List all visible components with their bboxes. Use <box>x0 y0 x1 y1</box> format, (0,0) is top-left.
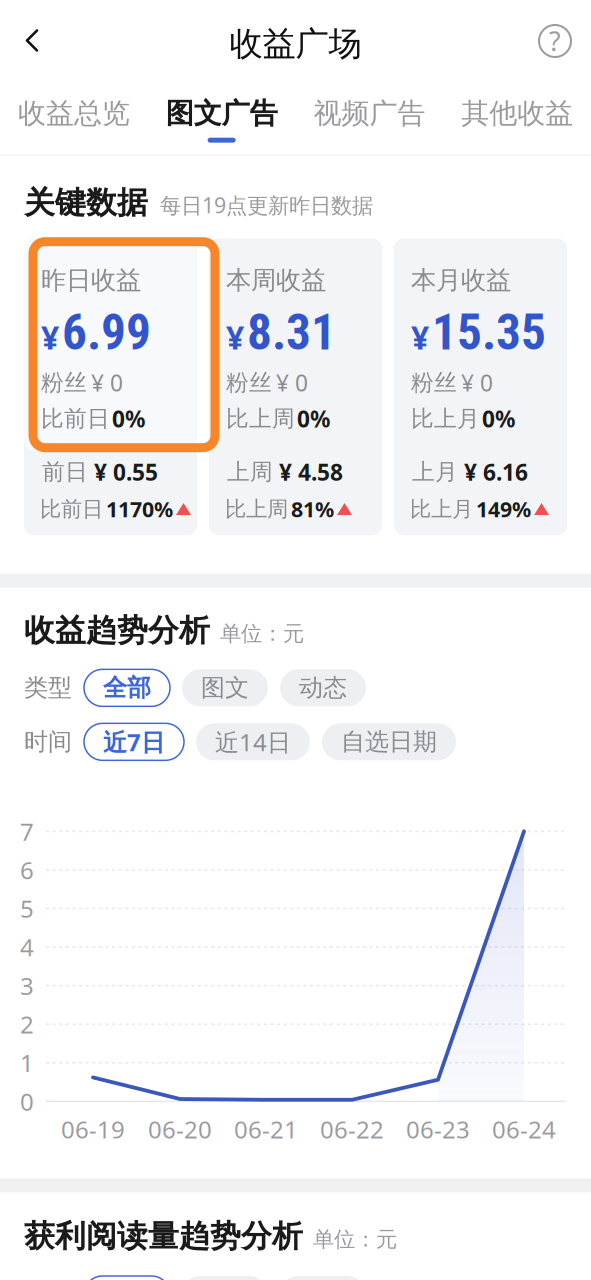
button[interactable]: 图文 <box>182 1276 268 1280</box>
staticText: ¥ 0 <box>91 368 123 398</box>
button[interactable]: 图文广告 <box>148 80 296 147</box>
staticText: 粉丝 <box>411 369 457 396</box>
staticText: 每日19点更新昨日数据 <box>160 191 373 219</box>
staticText: 本周收益 <box>226 265 326 296</box>
staticText: 其他收益 <box>461 96 573 131</box>
staticText: ¥ 0 <box>461 368 493 398</box>
staticText: 比上周 <box>225 496 288 522</box>
staticText: 3 <box>20 970 34 1002</box>
staticText: 上周 <box>227 458 273 486</box>
staticText: ¥ 0.55 <box>94 457 158 487</box>
staticText: 全部 <box>103 673 151 703</box>
staticText: 0 <box>20 1085 34 1117</box>
staticText: 视频广告 <box>313 96 425 131</box>
button[interactable]: 动态 <box>280 1276 366 1280</box>
staticText: 0% <box>112 404 145 434</box>
button[interactable]: 近14日 <box>196 723 310 760</box>
staticText: 单位：元 <box>220 620 304 647</box>
button[interactable]: 自选日期 <box>322 723 456 760</box>
staticText: 类型 <box>24 673 72 703</box>
button[interactable]: 近7日 <box>84 723 184 760</box>
staticText: 06-24 <box>492 1113 556 1145</box>
staticText: 收益广场 <box>229 23 361 64</box>
staticText: 图文 <box>201 673 249 703</box>
staticText: 149% <box>476 495 531 523</box>
staticText: 粉丝 <box>41 369 87 396</box>
staticText: 上月 <box>412 458 458 486</box>
staticText: 比上月 <box>411 405 480 433</box>
staticText: 获利阅读量趋势分析 <box>24 1217 303 1255</box>
staticText: 06-20 <box>148 1113 212 1145</box>
staticText: 1 <box>20 1047 34 1079</box>
staticText: 单位：元 <box>313 1226 397 1252</box>
button[interactable]: 视频广告 <box>295 80 443 147</box>
staticText: 2 <box>20 1008 34 1040</box>
staticText: 粉丝 <box>226 369 272 396</box>
staticText: 7 <box>20 815 34 847</box>
staticText: ? <box>549 23 561 59</box>
staticText: 时间 <box>24 727 72 757</box>
staticText: ¥ 4.58 <box>279 457 343 487</box>
staticText: ¥ <box>226 316 244 358</box>
staticText: 自选日期 <box>341 727 437 757</box>
staticText: 昨日收益 <box>41 265 141 296</box>
staticText: 关键数据 <box>24 184 148 222</box>
staticText: 比上周 <box>226 405 295 433</box>
staticText: 近7日 <box>103 726 165 758</box>
button[interactable]: Help <box>519 19 591 63</box>
staticText: 图文广告 <box>166 96 278 131</box>
staticText: 比前日 <box>41 405 110 433</box>
staticText: 0% <box>297 404 330 434</box>
staticText: 06-21 <box>234 1113 298 1145</box>
staticText: 4 <box>20 931 34 963</box>
button[interactable]: 图文 <box>182 669 268 706</box>
staticText: 5 <box>20 892 34 924</box>
staticText: ¥ 0 <box>276 368 308 398</box>
button[interactable]: 收益总览 <box>0 80 148 147</box>
button[interactable]: 动态 <box>280 669 366 706</box>
button[interactable]: 全部 <box>84 1276 170 1280</box>
staticText: 15.35 <box>432 304 546 362</box>
staticText: 06-19 <box>61 1113 125 1145</box>
button[interactable]: Back <box>0 14 63 67</box>
staticText: 06-23 <box>406 1113 470 1145</box>
staticText: 06-22 <box>320 1113 384 1145</box>
staticText: 81% <box>291 495 334 523</box>
button[interactable]: 其他收益 <box>443 80 591 147</box>
staticText: 比前日 <box>40 496 103 522</box>
staticText: ¥ <box>41 316 59 358</box>
staticText: 前日 <box>42 458 88 486</box>
staticText: ¥ 6.16 <box>464 457 528 487</box>
staticText: 6 <box>20 854 34 886</box>
staticText: 1170% <box>106 495 173 523</box>
staticText: 8.31 <box>247 304 336 362</box>
staticText: 比上月 <box>410 496 473 522</box>
staticText: 6.99 <box>62 304 151 362</box>
staticText: 收益趋势分析 <box>24 612 210 649</box>
staticText: 0% <box>482 404 515 434</box>
staticText: 本月收益 <box>411 265 511 296</box>
staticText: 动态 <box>299 673 347 703</box>
staticText: 近14日 <box>215 726 291 758</box>
staticText: 收益总览 <box>18 96 130 131</box>
button[interactable]: 全部 <box>84 669 170 706</box>
staticText: ¥ <box>411 316 429 358</box>
